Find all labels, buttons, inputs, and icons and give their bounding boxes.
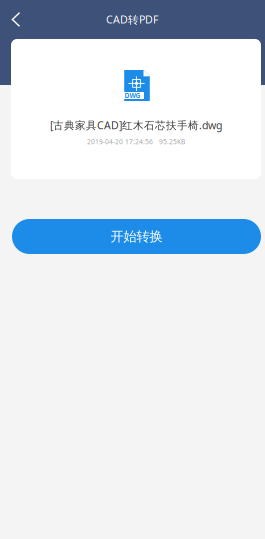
staticText: DWG	[125, 91, 141, 100]
staticText: [古典家具CAD]红木石芯扶手椅.dwg	[50, 118, 222, 132]
staticText: 开始转换	[110, 228, 162, 245]
staticText: CAD转PDF	[106, 12, 159, 27]
staticText: 2019-04-20 17:24:56 95.25KB	[87, 137, 185, 146]
button[interactable]: Back	[0, 2, 32, 36]
button[interactable]: 开始转换	[12, 219, 261, 254]
